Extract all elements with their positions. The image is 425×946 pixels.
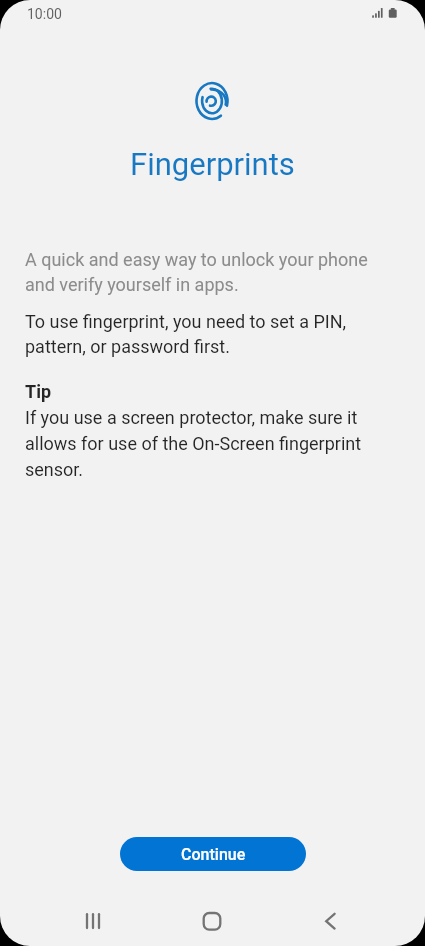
staticText: Continue (181, 845, 246, 864)
button[interactable] (141, 900, 283, 946)
button[interactable]: Continue (120, 837, 306, 871)
staticText: A quick and easy way to unlock your phon… (25, 249, 368, 295)
staticText: 10:00 (27, 6, 62, 22)
button[interactable] (0, 900, 141, 946)
staticText: Tip If you use a screen protector, make … (25, 381, 362, 480)
staticText: Fingerprints (130, 146, 295, 182)
staticText: To use fingerprint, you need to set a PI… (25, 311, 347, 357)
button[interactable] (283, 900, 425, 946)
